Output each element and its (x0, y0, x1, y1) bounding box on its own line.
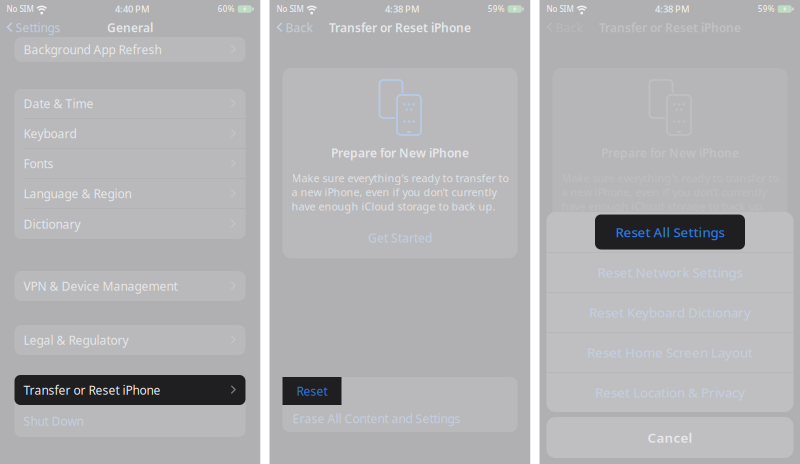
button[interactable]: Settings (0, 18, 67, 36)
staticText: Back (285, 19, 312, 35)
staticText: 4:40 PM (115, 3, 150, 15)
staticText: Prepare for New iPhone (331, 145, 469, 161)
staticText: Make sure everything's ready to transfer… (291, 171, 508, 213)
button[interactable]: Legal & Regulatory (14, 325, 245, 355)
staticText: No SIM (6, 4, 33, 14)
button[interactable]: Keyboard (14, 119, 245, 149)
staticText: Legal & Regulatory (23, 332, 128, 348)
staticText: Background App Refresh (23, 41, 161, 57)
staticText: Erase All Content and Settings (292, 410, 460, 426)
button[interactable]: Get Started (368, 230, 432, 245)
button[interactable]: Language & Region (14, 179, 245, 209)
staticText: 4:38 PM (385, 3, 420, 15)
staticText: 59% (488, 4, 505, 14)
staticText: Shut Down (23, 413, 83, 429)
button[interactable]: Background App Refresh (14, 37, 245, 62)
staticText: Language & Region (23, 186, 131, 202)
staticText: Reset (296, 383, 327, 399)
button[interactable]: Reset Keyboard Dictionary (546, 292, 793, 332)
staticText: Transfer or Reset iPhone (23, 382, 160, 398)
staticText: Reset All Settings (615, 223, 724, 241)
button[interactable]: Get Started (638, 230, 702, 245)
button[interactable]: Reset Home Screen Layout (546, 332, 793, 372)
staticText: Prepare for New iPhone (601, 145, 739, 161)
staticText: 60% (218, 4, 235, 14)
staticText: Reset Home Screen Layout (587, 343, 753, 361)
staticText: Reset Network Settings (597, 263, 742, 281)
button[interactable]: Transfer or Reset iPhone (14, 375, 245, 405)
button[interactable]: Reset Location & Privacy (546, 372, 793, 412)
button[interactable]: Date & Time (14, 89, 245, 119)
staticText: General (107, 19, 153, 35)
staticText: Cancel (647, 429, 692, 446)
staticText: Reset Location & Privacy (595, 383, 745, 401)
button[interactable]: VPN & Device Management (14, 271, 245, 301)
staticText: Reset Keyboard Dictionary (589, 303, 751, 321)
staticText: VPN & Device Management (23, 278, 177, 294)
staticText: Fonts (23, 156, 53, 172)
button[interactable]: Reset Network Settings (546, 252, 793, 292)
button[interactable]: Reset (282, 377, 341, 405)
staticText: Settings (15, 19, 60, 35)
button[interactable]: Reset All Settings (546, 212, 793, 252)
staticText: Date & Time (23, 96, 93, 112)
button[interactable]: Dictionary (14, 209, 245, 239)
staticText: Dictionary (23, 216, 80, 232)
staticText: Transfer or Reset iPhone (599, 19, 741, 35)
button[interactable]: Back (269, 18, 319, 36)
staticText: No SIM (546, 4, 573, 14)
staticText: No SIM (276, 4, 303, 14)
staticText: Get Started (638, 230, 702, 246)
button[interactable]: Fonts (14, 149, 245, 179)
staticText: Transfer or Reset iPhone (329, 19, 471, 35)
staticText: Get Started (368, 230, 432, 246)
button[interactable]: Shut Down (14, 405, 245, 437)
staticText: 59% (758, 4, 775, 14)
button[interactable]: Cancel (546, 417, 793, 458)
staticText: 4:38 PM (655, 3, 690, 15)
button[interactable]: Erase All Content and Settings (282, 405, 517, 432)
staticText: Keyboard (23, 126, 76, 142)
